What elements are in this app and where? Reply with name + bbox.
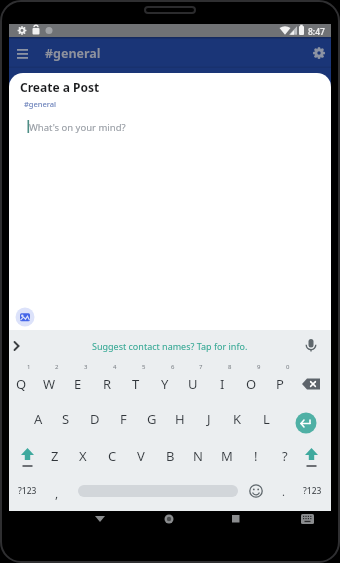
button[interactable]: C	[98, 440, 126, 472]
button[interactable]: T	[122, 368, 150, 400]
staticText: P	[276, 375, 284, 393]
staticText: I	[220, 375, 225, 393]
staticText: T	[132, 375, 140, 393]
button[interactable]	[297, 368, 327, 400]
staticText: M	[221, 447, 233, 465]
button[interactable]: O	[237, 368, 265, 400]
staticText: .	[282, 484, 285, 499]
staticText: E	[74, 375, 82, 393]
button[interactable]: ?	[271, 440, 299, 472]
staticText: L	[263, 410, 270, 428]
staticText: 0	[286, 363, 290, 371]
button[interactable]	[9, 330, 331, 358]
staticText: 8	[228, 363, 232, 371]
staticText: O	[246, 375, 257, 393]
staticText: 3	[84, 363, 88, 371]
button[interactable]: S	[52, 403, 80, 435]
button[interactable]: N	[184, 440, 212, 472]
button[interactable]	[14, 306, 36, 328]
staticText: ,	[55, 485, 59, 501]
button[interactable]: !	[242, 440, 270, 472]
staticText: K	[233, 410, 242, 428]
staticText: !	[254, 447, 258, 465]
button[interactable]: V	[127, 440, 155, 472]
button[interactable]: B	[156, 440, 184, 472]
button[interactable]: F	[109, 403, 137, 435]
button[interactable]	[295, 412, 317, 434]
staticText: H	[175, 410, 185, 428]
staticText: 7	[199, 363, 203, 371]
button[interactable]: ,	[49, 484, 65, 502]
button[interactable]: L	[252, 403, 280, 435]
button[interactable]: Q	[7, 368, 35, 400]
staticText: W	[43, 375, 56, 393]
staticText: ?	[282, 447, 288, 465]
button[interactable]: G	[138, 403, 166, 435]
button[interactable]: D	[81, 403, 109, 435]
button[interactable]: K	[223, 403, 251, 435]
staticText: S	[62, 410, 70, 428]
button[interactable]: M	[213, 440, 241, 472]
button[interactable]	[157, 508, 181, 528]
staticText: A	[34, 410, 43, 428]
staticText: 8:47	[308, 26, 325, 38]
button[interactable]	[246, 481, 266, 501]
staticText: C	[108, 447, 117, 465]
staticText: U	[188, 375, 198, 393]
staticText: R	[103, 375, 112, 393]
staticText: What's on your mind?	[29, 121, 126, 134]
button[interactable]: What's on your mind?	[24, 118, 214, 136]
staticText: F	[120, 410, 127, 428]
staticText: #general	[24, 99, 57, 109]
button[interactable]: H	[166, 403, 194, 435]
staticText: B	[166, 447, 175, 465]
staticText: 4	[113, 363, 117, 371]
staticText: Q	[16, 375, 27, 393]
button[interactable]	[88, 508, 112, 528]
button[interactable]	[295, 508, 319, 528]
button[interactable]: Z	[41, 440, 69, 472]
button[interactable]: R	[93, 368, 121, 400]
button[interactable]: J	[195, 403, 223, 435]
button[interactable]: ?123	[10, 481, 44, 501]
staticText: Create a Post	[20, 79, 100, 95]
staticText: 9	[257, 363, 261, 371]
button[interactable]	[18, 446, 37, 472]
staticText: X	[79, 447, 87, 465]
staticText: Y	[161, 375, 169, 393]
staticText: ?123	[303, 485, 322, 497]
staticText: V	[137, 447, 145, 465]
staticText: 6	[171, 363, 175, 371]
button[interactable]: .	[276, 482, 290, 500]
button[interactable]	[302, 446, 321, 472]
button[interactable]	[11, 42, 33, 64]
button[interactable]: I	[208, 368, 236, 400]
button[interactable]: ?123	[295, 481, 329, 501]
button[interactable]: E	[64, 368, 92, 400]
staticText: J	[207, 410, 211, 428]
staticText: #general	[45, 45, 101, 62]
staticText: 5	[142, 363, 146, 371]
button[interactable]: Y	[151, 368, 179, 400]
staticText: 2	[55, 363, 59, 371]
button[interactable]: X	[69, 440, 97, 472]
button[interactable]: W	[35, 368, 63, 400]
button[interactable]: P	[266, 368, 294, 400]
staticText: Suggest contact names? Tap for info.	[92, 340, 248, 352]
staticText: ?123	[18, 485, 37, 497]
staticText: G	[147, 410, 157, 428]
staticText: D	[90, 410, 100, 428]
staticText: 1	[27, 363, 31, 371]
staticText: N	[193, 447, 203, 465]
button[interactable]: U	[179, 368, 207, 400]
button[interactable]	[308, 42, 330, 64]
button[interactable]: A	[24, 403, 52, 435]
button[interactable]	[224, 508, 248, 528]
staticText: Z	[51, 447, 59, 465]
